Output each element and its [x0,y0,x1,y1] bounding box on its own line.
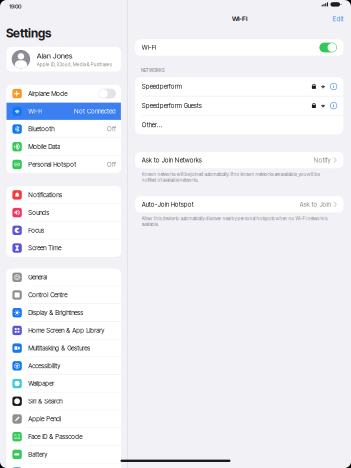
staticText: Ask to Join [300,200,331,208]
staticText: Ask to Join Networks [142,156,202,164]
button[interactable]: Edit [329,12,347,26]
staticText: Wallpaper [28,380,54,387]
button[interactable]: Wallpaper [6,375,121,393]
staticText: Notifications [28,191,62,199]
staticText: Wi-Fi [232,15,247,23]
staticText: Apple ID, iCloud, Media & Purchases [37,62,112,67]
staticText: Speedperform Guests [142,102,202,109]
staticText: Display & Brightness [28,309,83,316]
staticText: General [28,273,47,281]
staticText: Screen Time [28,244,61,252]
staticText: Face ID & Passcode [28,433,82,440]
staticText: Siri & Search [28,397,62,405]
button[interactable]: Airplane Mode [6,85,121,103]
button[interactable]: Mobile Data [6,138,121,156]
button[interactable]: Multitasking & Gestures [6,339,121,357]
button[interactable]: Wi-Fi [6,103,121,120]
staticText: Wi-Fi [142,44,156,51]
button[interactable]: Siri & Search [6,393,121,410]
staticText: Settings [6,26,51,40]
staticText: Airplane Mode [28,90,67,97]
button[interactable]: Screen Time [6,239,121,257]
staticText: 19:00 [9,3,21,10]
button[interactable]: Wi-Fi [135,39,343,56]
staticText: Speedperform [142,83,182,90]
staticText: Personal Hotspot [28,161,76,168]
staticText: Battery [28,450,47,458]
staticText: Off [107,125,116,133]
button[interactable]: Network info [330,83,337,90]
staticText: Home Screen & App Library [28,326,104,334]
button[interactable]: Accessibility [6,357,121,375]
staticText: Wi-Fi [28,107,42,115]
staticText: NETWORKS [141,68,165,73]
staticText: Known networks will be joined automatica… [142,171,320,183]
button[interactable]: Bluetooth [6,120,121,138]
button[interactable]: Apple Pencil [6,410,121,428]
button[interactable]: Control Centre [6,286,121,304]
staticText: Multitasking & Gestures [28,344,90,352]
staticText: Notify [314,156,331,164]
staticText: Sounds [28,209,49,216]
staticText: Mobile Data [28,143,60,150]
staticText: Not Connected [74,107,116,115]
staticText: Other... [142,121,163,129]
staticText: Bluetooth [28,125,54,133]
button[interactable]: Face ID & Passcode [6,428,121,446]
button[interactable]: Alan Jones [0,47,127,71]
button[interactable]: Sounds [6,204,121,222]
staticText: Allow this device to automatically disco… [142,216,328,227]
button[interactable]: Personal Hotspot [6,156,121,173]
button[interactable]: Speedperform [135,77,343,96]
staticText: Focus [28,226,44,234]
staticText: Accessibility [28,362,60,370]
button[interactable]: Auto-Join Hotspot [135,196,343,213]
button[interactable]: Home Screen & App Library [6,322,121,339]
button[interactable]: Privacy & Security [6,463,121,468]
button[interactable]: Speedperform Guests [135,96,343,115]
button[interactable]: Notifications [6,186,121,204]
button[interactable]: Focus [6,222,121,239]
staticText: Off [107,161,116,168]
button[interactable]: Network info [330,102,337,109]
button[interactable]: General [6,269,121,286]
staticText: Edit [332,15,343,23]
button[interactable]: Battery [6,446,121,463]
button[interactable]: Other... [135,115,343,134]
staticText: Control Centre [28,291,67,299]
button[interactable]: Display & Brightness [6,304,121,322]
staticText: Apple Pencil [28,415,61,423]
staticText: Alan Jones [37,51,73,60]
staticText: Auto-Join Hotspot [142,200,194,208]
button[interactable]: Ask to Join Networks [135,152,343,168]
